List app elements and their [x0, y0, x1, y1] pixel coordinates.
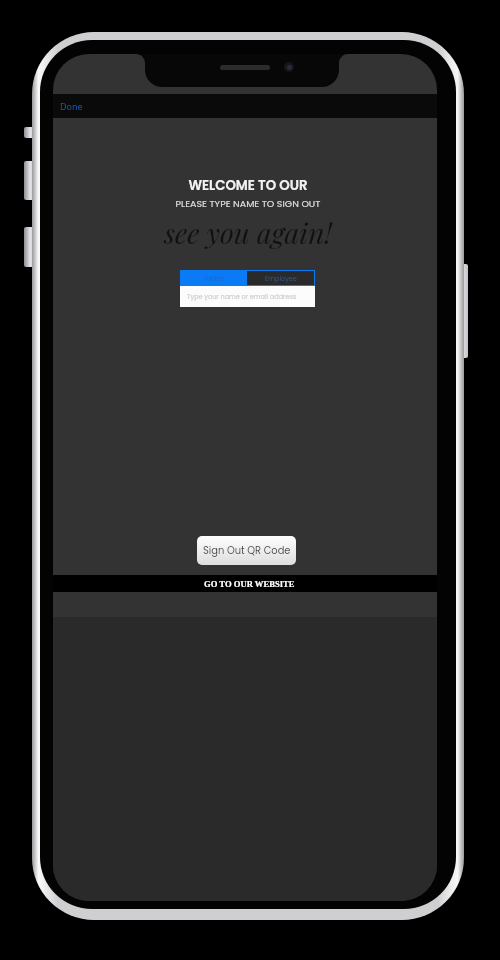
button[interactable]: Visitor — [180, 270, 247, 286]
staticText: Done — [60, 100, 83, 112]
button[interactable]: Done — [53, 95, 90, 117]
staticText: Employee — [265, 274, 297, 283]
button[interactable]: Employee — [247, 270, 315, 286]
staticText: PLEASE TYPE NAME TO SIGN OUT — [56, 197, 437, 210]
button[interactable]: Sign Out QR Code — [197, 536, 296, 565]
staticText: see you again! — [56, 213, 437, 251]
staticText: WELCOME TO OUR — [56, 176, 437, 195]
staticText: Type your name or email address — [187, 292, 297, 301]
button[interactable]: GO TO OUR WEBSITE — [53, 575, 437, 592]
button[interactable]: Type your name or email address — [180, 286, 315, 307]
staticText: Visitor — [204, 274, 224, 283]
staticText: Sign Out QR Code — [203, 544, 291, 558]
staticText: GO TO OUR WEBSITE — [204, 579, 295, 589]
